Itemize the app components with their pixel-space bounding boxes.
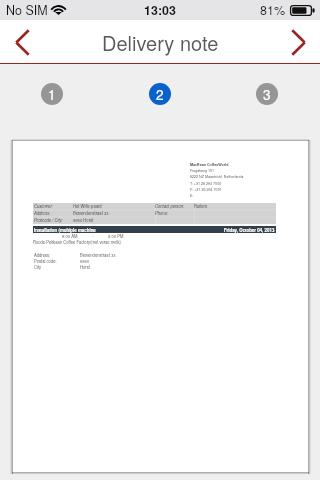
staticText: Installation (multiple machine: [34, 227, 96, 233]
staticText: Beivendenstraat 33: [80, 252, 116, 258]
staticText: Friday, October 04, 2013: [224, 227, 275, 233]
staticText: 5:00 PM: [108, 233, 124, 239]
button[interactable]: Next: [276, 20, 320, 64]
staticText: 6222 NZ Maastricht, Netherlands: [190, 174, 244, 179]
staticText: Phone:: [155, 210, 194, 216]
staticText: F: +31 26 264 7001: [190, 187, 222, 192]
staticText: E:: [190, 193, 194, 198]
staticText: Postal code:: [34, 258, 57, 264]
staticText: Fregatweg 151: [190, 168, 215, 173]
staticText: Roode Pelikaan Coffee Factory(met verse …: [33, 239, 121, 245]
staticText: 81%: [260, 1, 286, 19]
staticText: 2: [156, 85, 164, 104]
staticText: 9:00 AM: [62, 233, 78, 239]
staticText: No SIM: [6, 1, 48, 19]
staticText: Address:: [34, 252, 51, 258]
staticText: 1: [48, 85, 56, 104]
staticText: T: +31 26 264 7000: [190, 181, 222, 186]
staticText: Ruiters: [194, 203, 208, 209]
button[interactable]: 2: [149, 83, 171, 105]
staticText: 5960 Horst: [73, 217, 155, 223]
staticText: Postcode / City:: [34, 217, 73, 223]
staticText: City: [34, 264, 42, 270]
staticText: -: [92, 233, 94, 239]
staticText: Delivery note: [102, 28, 219, 57]
staticText: 3: [263, 85, 271, 104]
staticText: 5960: [80, 258, 90, 264]
button[interactable]: 1: [41, 83, 63, 105]
button[interactable]: 3: [256, 83, 278, 105]
staticText: Het Witte paard: [73, 203, 155, 209]
staticText: Beivendenstraat 33: [73, 210, 155, 216]
staticText: 13:03: [144, 1, 176, 19]
staticText: Contact person:: [155, 203, 194, 209]
staticText: Address:: [34, 210, 73, 216]
staticText: Horst: [80, 264, 90, 270]
button[interactable]: Previous: [0, 20, 44, 64]
staticText: Customer:: [34, 203, 73, 209]
staticText: MacBean CoffeeWorld: [190, 162, 229, 167]
